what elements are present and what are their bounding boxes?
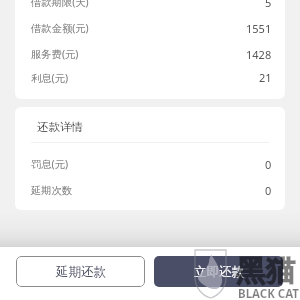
staticText: 5 <box>265 0 272 10</box>
staticText: 1428 <box>246 47 272 62</box>
staticText: 利息(元) <box>31 71 69 85</box>
button[interactable]: 延期还款 <box>16 256 145 287</box>
staticText: 延期还款 <box>56 264 106 280</box>
staticText: 黑猫 <box>236 253 295 290</box>
staticText: 立即还款 <box>194 264 244 280</box>
staticText: BLACK CAT <box>238 286 299 300</box>
staticText: 延期次数 <box>31 184 73 197</box>
staticText: 借款金额(元) <box>31 21 89 35</box>
staticText: 0 <box>265 157 272 172</box>
staticText: 1551 <box>246 21 272 36</box>
staticText: 0 <box>265 183 272 198</box>
staticText: 21 <box>259 70 272 85</box>
staticText: 还款详情 <box>37 120 83 134</box>
staticText: 服务费(元) <box>31 47 79 61</box>
staticText: 罚息(元) <box>31 157 69 171</box>
button[interactable]: 立即还款 <box>154 256 283 287</box>
staticText: 借款期限(天) <box>31 0 89 9</box>
